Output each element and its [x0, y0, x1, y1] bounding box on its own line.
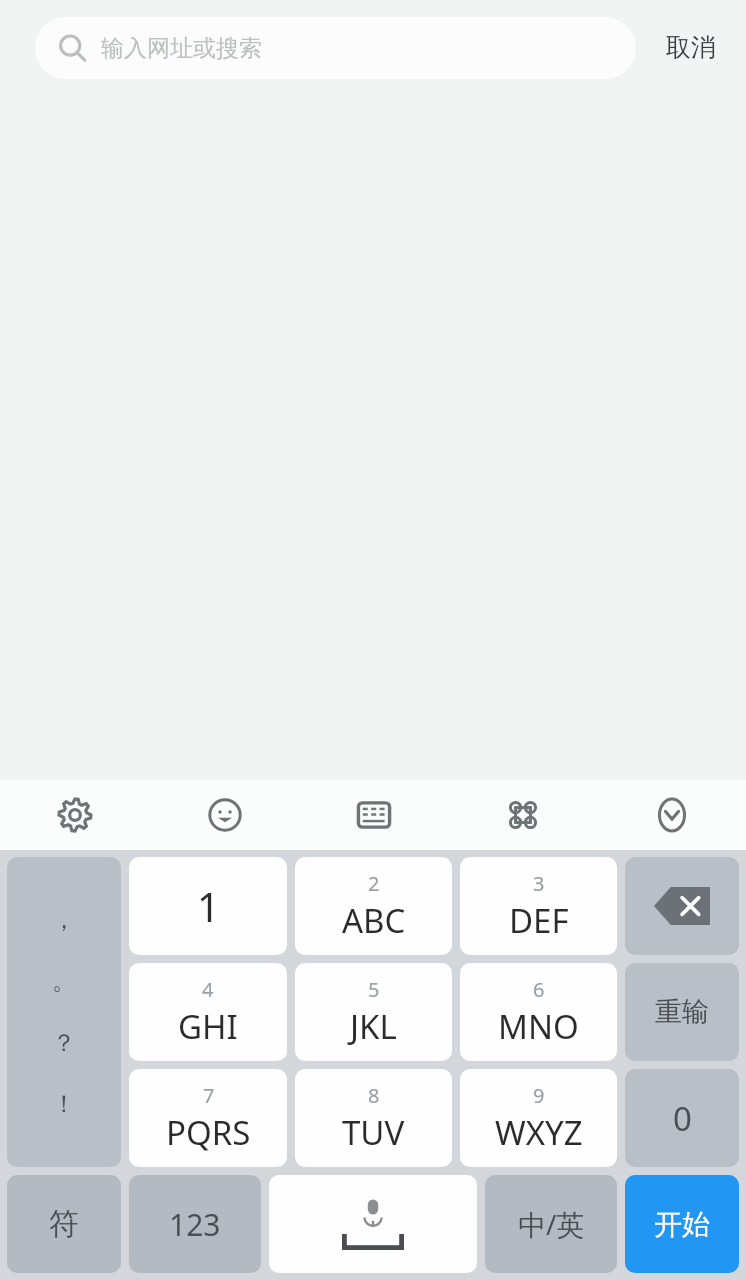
- button[interactable]: Keyboard layout: [299, 780, 448, 850]
- button[interactable]: 中/英: [485, 1175, 617, 1273]
- staticText: DEF: [509, 898, 569, 943]
- staticText: 0: [673, 1096, 692, 1141]
- staticText: 。: [52, 966, 76, 996]
- staticText: 重输: [655, 995, 709, 1029]
- staticText: GHI: [178, 1004, 238, 1049]
- staticText: 2: [368, 870, 380, 897]
- staticText: 输入网址或搜索: [101, 34, 262, 63]
- button[interactable]: Backspace: [625, 857, 739, 955]
- staticText: ？: [52, 1028, 76, 1058]
- staticText: 123: [169, 1204, 221, 1245]
- button[interactable]: 开始: [625, 1175, 739, 1273]
- button[interactable]: Settings: [0, 780, 150, 850]
- button[interactable]: 取消: [636, 0, 746, 95]
- button[interactable]: 6: [460, 963, 617, 1061]
- staticText: PQRS: [166, 1110, 251, 1155]
- staticText: 1: [197, 879, 220, 933]
- button[interactable]: 1: [129, 857, 287, 955]
- button[interactable]: 输入网址或搜索: [35, 17, 636, 79]
- button[interactable]: 5: [295, 963, 452, 1061]
- button[interactable]: 符: [7, 1175, 121, 1273]
- button[interactable]: 9: [460, 1069, 617, 1167]
- staticText: 7: [203, 1082, 215, 1109]
- staticText: MNO: [498, 1004, 579, 1049]
- button[interactable]: 重输: [625, 963, 739, 1061]
- button[interactable]: 7: [129, 1069, 287, 1167]
- staticText: 8: [368, 1082, 380, 1109]
- button[interactable]: Space: [269, 1175, 477, 1273]
- staticText: ，: [52, 905, 76, 935]
- staticText: TUV: [342, 1110, 405, 1155]
- staticText: JKL: [350, 1004, 397, 1049]
- button[interactable]: Shortcuts: [448, 780, 597, 850]
- staticText: 9: [533, 1082, 545, 1109]
- button[interactable]: 2: [295, 857, 452, 955]
- staticText: 开始: [654, 1207, 710, 1242]
- staticText: ABC: [342, 898, 406, 943]
- button[interactable]: 4: [129, 963, 287, 1061]
- button[interactable]: ，: [7, 857, 121, 1167]
- staticText: 3: [533, 870, 545, 897]
- staticText: 符: [49, 1205, 79, 1243]
- staticText: 6: [533, 976, 545, 1003]
- button[interactable]: 3: [460, 857, 617, 955]
- staticText: 5: [368, 976, 380, 1003]
- button[interactable]: 123: [129, 1175, 261, 1273]
- staticText: 4: [202, 976, 214, 1003]
- button[interactable]: 0: [625, 1069, 739, 1167]
- button[interactable]: Emoji: [150, 780, 299, 850]
- staticText: 中/英: [518, 1205, 585, 1243]
- staticText: 取消: [666, 32, 716, 63]
- staticText: WXYZ: [495, 1110, 583, 1155]
- staticText: ！: [52, 1089, 76, 1119]
- button[interactable]: 8: [295, 1069, 452, 1167]
- button[interactable]: Hide keyboard: [597, 780, 746, 850]
